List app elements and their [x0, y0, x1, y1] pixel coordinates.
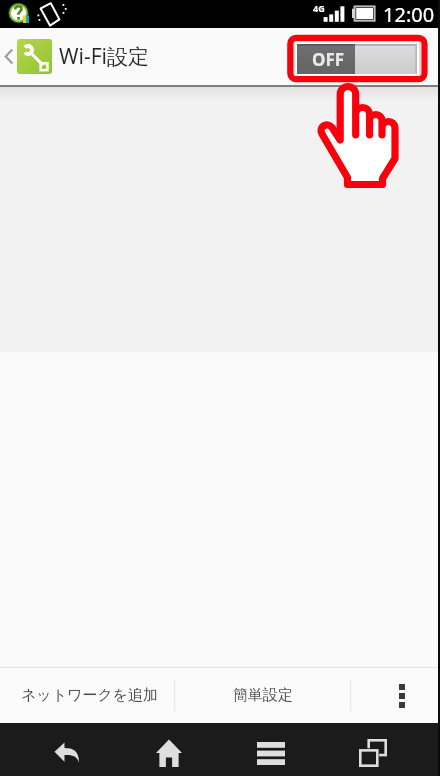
button[interactable]: ネットワークを追加 — [0, 668, 180, 723]
button[interactable]: Recent apps — [323, 726, 423, 776]
staticText: 4G — [313, 2, 325, 14]
button[interactable]: More options — [346, 668, 440, 723]
staticText: OFF — [312, 48, 345, 71]
staticText: 12:00 — [383, 1, 435, 28]
button[interactable]: Menu — [221, 727, 321, 776]
button[interactable]: Back — [0, 28, 17, 85]
button[interactable]: Wi-Fi OFF toggle — [294, 41, 420, 77]
button[interactable]: 簡単設定 — [180, 668, 346, 723]
staticText: ネットワークを追加 — [21, 686, 159, 705]
staticText: Wi-Fi設定 — [59, 42, 150, 71]
staticText: 簡単設定 — [233, 686, 293, 705]
button[interactable]: Back — [16, 726, 116, 776]
button[interactable]: Home — [119, 726, 219, 776]
